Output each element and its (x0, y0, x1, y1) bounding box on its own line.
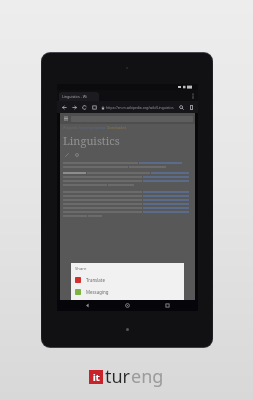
button[interactable]: Bookmark page (186, 102, 196, 112)
button[interactable]: Home (122, 300, 133, 311)
button[interactable]: https://en.m.wikipedia.org/wiki/Linguist… (100, 103, 176, 112)
staticText: https://en.m.wikipedia.org/wiki/Linguist… (106, 105, 174, 110)
staticText: eng (131, 364, 164, 389)
button[interactable]: Messaging (71, 286, 184, 298)
button[interactable]: Reload (79, 102, 89, 112)
button[interactable]: Linguistics - Wi (59, 92, 99, 101)
staticText: Messaging (86, 289, 109, 295)
button[interactable]: Bookmarks (89, 102, 99, 112)
staticText: Linguistics - Wi (62, 94, 88, 99)
button[interactable]: Watch (73, 151, 80, 158)
button[interactable]: Back (59, 102, 69, 112)
button[interactable]: Recent apps (162, 300, 173, 311)
button[interactable]: Back (82, 300, 93, 311)
button[interactable]: Search (176, 102, 186, 112)
staticText: it (93, 371, 100, 383)
staticText: tur (105, 364, 131, 389)
button[interactable]: Forward (69, 102, 79, 112)
button[interactable]: Translate (71, 274, 184, 286)
staticText: Downloaded (107, 126, 126, 130)
button[interactable]: More options (189, 92, 196, 99)
staticText: Share (75, 266, 87, 272)
button[interactable]: Menu (62, 115, 69, 122)
staticText: Linguistics (63, 133, 120, 148)
staticText: Wikipedia (63, 126, 79, 130)
staticText: Translate (86, 277, 105, 283)
staticText: free encyclopedia (79, 126, 107, 130)
button[interactable]: Edit (63, 151, 70, 158)
